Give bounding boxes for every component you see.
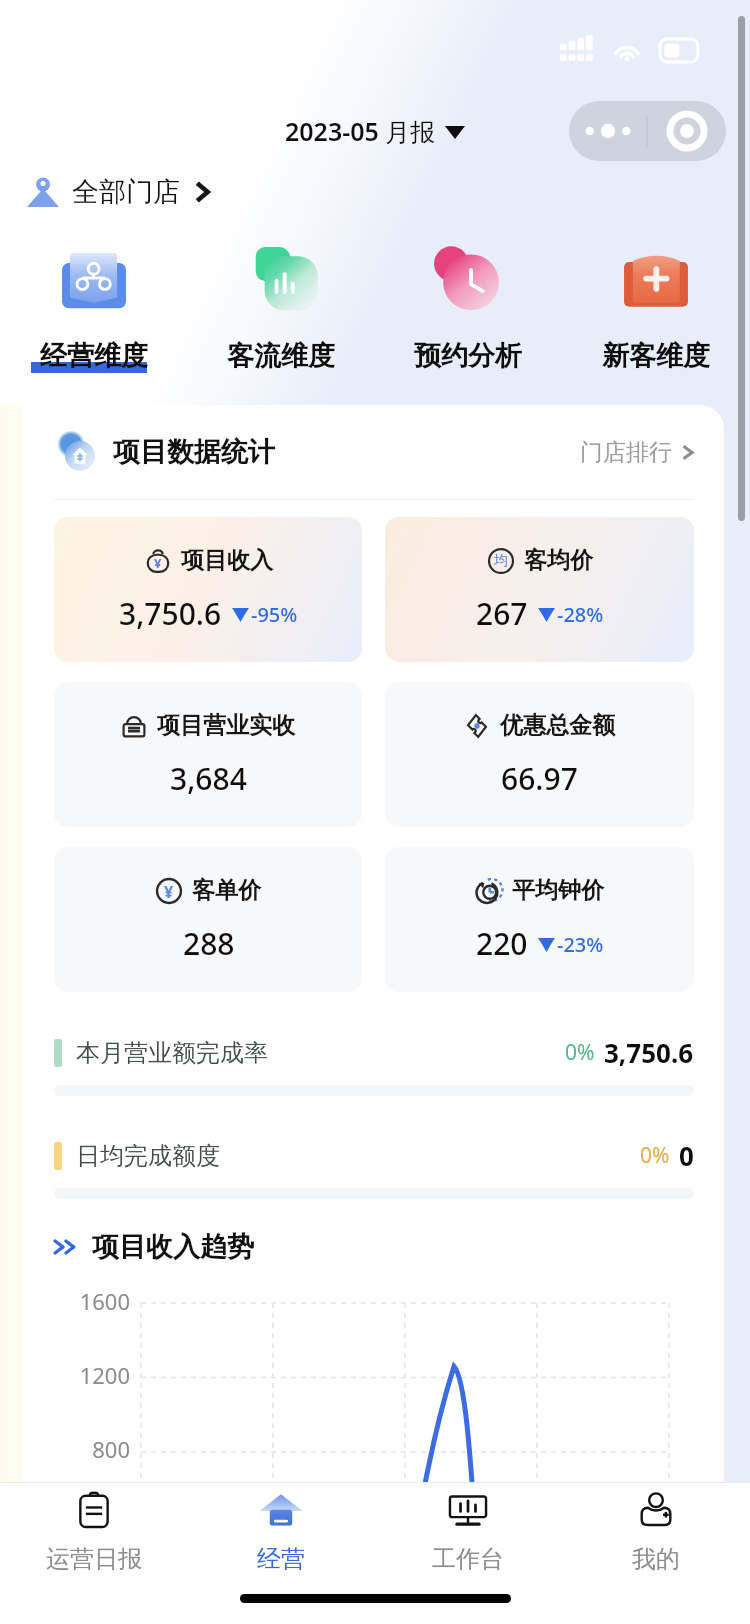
button[interactable]: 门店排行 [580,438,694,467]
staticText: ¥ [164,881,174,903]
staticText: 项目数据统计 [113,435,275,469]
staticText: 预约分析 [414,339,522,373]
button[interactable]: 客流维度 [187,247,374,373]
staticText: 1600 [79,1286,130,1316]
staticText: 项目营业实收 [157,711,295,740]
staticText: 客流维度 [227,339,335,373]
staticText: 220 [476,923,528,964]
staticText: 平均钟价 [512,876,604,905]
staticText: 0 [679,1138,694,1173]
button[interactable]: 经营 [187,1483,374,1579]
staticText: 项目收入 [181,546,273,575]
button[interactable]: 我的 [562,1483,750,1579]
staticText: 2023-05 月报 [285,114,436,148]
staticText: -95% [251,601,298,628]
staticText: 全部门店 [72,175,180,209]
staticText: -28% [557,601,604,628]
button[interactable]: 平均钟价 [385,847,694,992]
staticText: 经营 [257,1544,305,1574]
button[interactable]: 运营日报 [0,1483,187,1579]
staticText: 3,750.6 [604,1035,694,1070]
staticText: 客均价 [524,546,593,575]
button[interactable]: 2023-05 月报 [285,114,465,148]
staticText: 日均完成额度 [76,1141,220,1171]
staticText: 工作台 [432,1544,504,1574]
staticText: 288 [183,923,235,964]
staticText: 3,684 [170,758,247,799]
staticText: 1200 [79,1360,130,1390]
staticText: -23% [557,931,604,958]
staticText: 经营维度 [40,339,148,373]
staticText: 均 [494,552,508,570]
staticText: 我的 [632,1544,680,1574]
staticText: 客单价 [192,876,261,905]
staticText: 66.97 [501,758,578,799]
staticText: 0% [640,1141,670,1170]
staticText: 门店排行 [580,438,672,467]
button[interactable]: 工作台 [374,1483,562,1579]
button[interactable]: 均 [385,517,694,662]
staticText: 项目收入趋势 [92,1230,254,1264]
staticText: 267 [476,593,528,634]
button[interactable]: 预约分析 [374,247,562,373]
button[interactable]: 全部门店 [26,175,210,209]
button[interactable]: 项目营业实收 [54,682,362,827]
button[interactable]: More options [569,101,726,161]
staticText: 运营日报 [46,1544,142,1574]
staticText: 3,750.6 [119,593,222,634]
staticText: 本月营业额完成率 [76,1038,268,1068]
staticText: 800 [92,1434,130,1464]
staticText: 0% [565,1038,595,1067]
button[interactable]: 新客维度 [562,247,750,373]
button[interactable]: 经营维度 [0,247,187,373]
staticText: 新客维度 [602,339,710,373]
button[interactable]: 优惠总金额 [385,682,694,827]
staticText: 优惠总金额 [500,711,615,740]
button[interactable]: ¥ [54,847,362,992]
staticText: ¥ [154,554,162,572]
button[interactable]: ¥ [54,517,362,662]
